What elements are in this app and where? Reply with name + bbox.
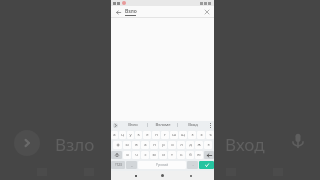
staticText: Взло (55, 133, 95, 156)
button[interactable]: Home (159, 172, 166, 179)
button[interactable]: а (141, 141, 149, 149)
staticText: а (113, 132, 116, 138)
staticText: м (152, 152, 156, 158)
button[interactable]: Shift (111, 151, 122, 159)
staticText: н (155, 132, 158, 138)
staticText: щ (181, 132, 185, 138)
button[interactable]: Взломе (148, 121, 177, 129)
button[interactable]: Back (132, 172, 139, 179)
staticText: у (129, 132, 132, 138)
button[interactable]: Voice input (288, 131, 308, 151)
staticText: е (146, 132, 149, 138)
button[interactable]: щ (179, 131, 187, 139)
button[interactable]: Space (138, 161, 186, 169)
button[interactable]: л (177, 141, 185, 149)
staticText: з (191, 132, 194, 138)
button[interactable]: ж (195, 141, 203, 149)
staticText: ю (197, 152, 201, 158)
staticText: Взло (128, 122, 138, 128)
button[interactable]: Вход (178, 121, 207, 129)
button[interactable]: ?123 (111, 161, 125, 169)
button[interactable]: ш (170, 131, 178, 139)
staticText: л (180, 142, 183, 148)
button[interactable]: в (132, 141, 140, 149)
button[interactable]: у (127, 131, 134, 139)
button[interactable]: ю (195, 151, 203, 159)
button[interactable]: ы (123, 141, 131, 149)
staticText: в (135, 142, 138, 148)
button[interactable]: и (159, 151, 167, 159)
staticText: с (144, 152, 147, 158)
button[interactable]: н (152, 131, 160, 139)
staticText: Вход (188, 122, 198, 128)
button[interactable]: ч (132, 151, 140, 159)
staticText: ф (116, 142, 120, 148)
staticText: ц (121, 132, 124, 138)
button[interactable]: р (159, 141, 167, 149)
staticText: ъ (209, 132, 212, 138)
button[interactable]: ь (177, 151, 185, 159)
button[interactable]: Взло (118, 121, 147, 129)
button[interactable]: Back (114, 8, 122, 16)
staticText: а (144, 142, 147, 148)
button[interactable]: Search (199, 161, 214, 169)
button[interactable]: г (161, 131, 169, 139)
button[interactable]: Keyboard options (207, 121, 214, 129)
staticText: о (171, 142, 174, 148)
staticText: ?123 (115, 163, 122, 167)
staticText: д (189, 142, 192, 148)
button[interactable]: Backspace (204, 151, 214, 159)
button[interactable]: Recent apps (187, 172, 194, 179)
button[interactable]: т (168, 151, 176, 159)
button[interactable]: э (204, 141, 212, 149)
staticText: Взло (125, 8, 137, 15)
staticText: Русский (156, 163, 169, 167)
button[interactable]: б (186, 151, 194, 159)
staticText: х (200, 132, 203, 138)
button[interactable]: Clear (203, 8, 211, 16)
staticText: э (207, 142, 210, 148)
staticText: , (131, 162, 133, 168)
staticText: и (162, 152, 165, 158)
button[interactable]: к (135, 131, 142, 139)
staticText: ь (180, 152, 183, 158)
staticText: б (189, 152, 192, 158)
button[interactable]: Взло (125, 8, 203, 16)
button[interactable]: о (168, 141, 176, 149)
button[interactable]: а (111, 131, 118, 139)
button[interactable]: с (141, 151, 149, 159)
button[interactable]: ц (119, 131, 126, 139)
staticText: Взломе (155, 122, 171, 128)
staticText: Вход (225, 133, 265, 156)
staticText: г (164, 132, 166, 138)
staticText: ж (197, 142, 201, 148)
staticText: . (192, 162, 194, 168)
button[interactable]: м (150, 151, 158, 159)
staticText: ы (125, 142, 129, 148)
button[interactable]: ф (113, 141, 122, 149)
staticText: т (171, 152, 173, 158)
staticText: ш (172, 132, 176, 138)
button[interactable]: з (188, 131, 196, 139)
staticText: я (126, 152, 129, 158)
staticText: ч (135, 152, 138, 158)
button[interactable]: More suggestions (113, 123, 118, 128)
button[interactable]: Next (14, 130, 40, 156)
button[interactable]: е (143, 131, 151, 139)
staticText: к (137, 132, 140, 138)
button[interactable]: ъ (206, 131, 214, 139)
button[interactable]: п (150, 141, 158, 149)
button[interactable]: х (197, 131, 205, 139)
staticText: р (162, 142, 165, 148)
button[interactable]: д (186, 141, 194, 149)
button[interactable]: , (126, 161, 137, 169)
staticText: п (153, 142, 156, 148)
button[interactable]: я (123, 151, 131, 159)
